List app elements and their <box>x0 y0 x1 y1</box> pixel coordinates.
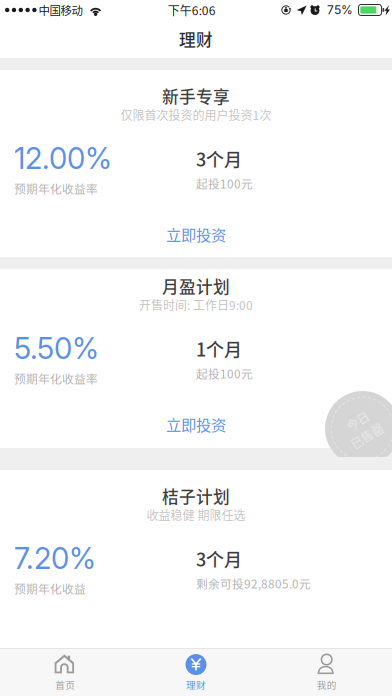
staticText: 我的 <box>317 677 337 691</box>
staticText: 剩余可投92,8805.0元 <box>196 575 311 592</box>
staticText: 首页 <box>55 677 75 691</box>
button[interactable]: 理财 <box>131 648 261 696</box>
staticText: 仅限首次投资的用户投资1次 <box>120 106 271 123</box>
staticText: 3个月 <box>196 146 242 172</box>
staticText: 桔子计划 <box>162 484 230 508</box>
staticText: 收益稳健 期限任选 <box>146 506 245 523</box>
staticText: 新手专享 <box>162 84 230 108</box>
button[interactable]: 我的 <box>261 648 392 696</box>
staticText: 预期年化收益 <box>14 580 86 597</box>
staticText: 已售罄 <box>344 428 380 446</box>
button[interactable]: 立即投资 <box>0 401 392 447</box>
staticText: 预期年化收益率 <box>14 370 98 387</box>
staticText: 预期年化收益率 <box>14 180 98 197</box>
staticText: 开售时间: 工作日9:00 <box>139 296 253 313</box>
button[interactable]: 首页 <box>0 648 131 696</box>
staticText: 起投100元 <box>196 365 253 382</box>
staticText: 75% <box>327 3 353 17</box>
staticText: 理财 <box>186 677 206 691</box>
button[interactable]: 立即投资 <box>0 211 392 257</box>
staticText: 12.00% <box>14 140 112 176</box>
staticText: 下午6:06 <box>168 1 216 19</box>
staticText: 7.20% <box>14 540 96 576</box>
staticText: 中国移动 <box>39 2 83 18</box>
staticText: 立即投资 <box>166 413 226 435</box>
staticText: 理财 <box>179 27 213 51</box>
staticText: 1个月 <box>196 336 242 362</box>
staticText: 3个月 <box>196 546 242 572</box>
staticText: 5.50% <box>14 330 99 366</box>
staticText: 月盈计划 <box>162 274 230 298</box>
staticText: 今日 <box>350 411 374 428</box>
staticText: 立即投资 <box>166 223 226 245</box>
staticText: 起投100元 <box>196 175 253 192</box>
